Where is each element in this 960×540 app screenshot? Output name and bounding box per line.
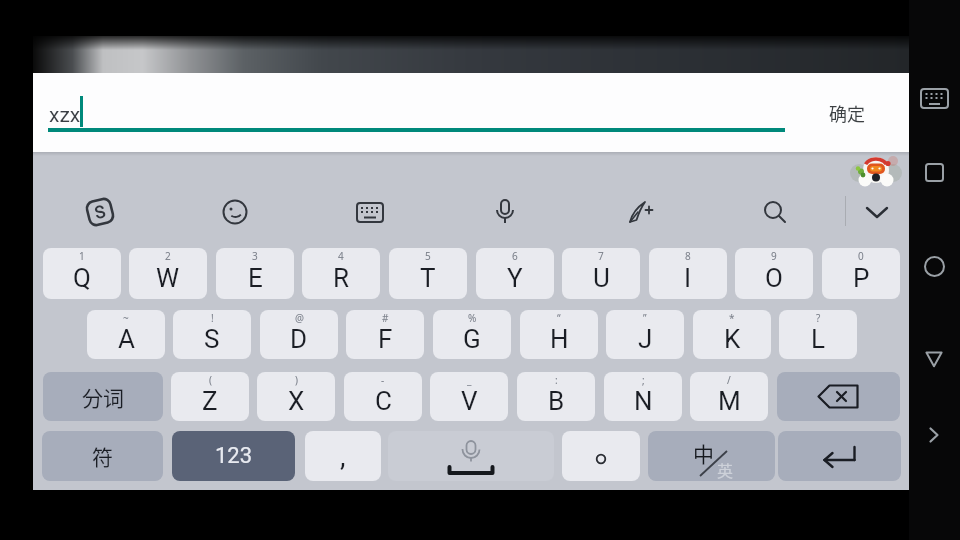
staticText: _ — [467, 373, 472, 387]
staticText: B — [548, 386, 565, 416]
staticText: ) — [295, 373, 298, 387]
button[interactable]: ) — [257, 372, 335, 421]
staticText: 英 — [717, 458, 734, 481]
staticText: E — [248, 263, 263, 293]
button[interactable]: 符 — [42, 431, 163, 481]
staticText: 7 — [598, 249, 604, 263]
button[interactable] — [920, 88, 949, 109]
staticText: 8 — [685, 249, 691, 263]
staticText: 中 — [693, 438, 714, 468]
staticText: # — [382, 311, 389, 325]
button[interactable]: 确定 — [784, 73, 909, 152]
button[interactable]: 123 — [172, 431, 295, 481]
staticText: G — [463, 324, 481, 354]
button[interactable] — [562, 431, 640, 481]
button[interactable] — [778, 431, 901, 481]
staticText: 5 — [425, 249, 431, 263]
staticText: 4 — [338, 249, 344, 263]
staticText: 9 — [771, 249, 777, 263]
staticText: @ — [295, 311, 304, 325]
button[interactable]: : — [517, 372, 595, 421]
button[interactable]: 4 — [302, 248, 380, 299]
staticText: X — [288, 386, 305, 416]
button[interactable]: - — [344, 372, 422, 421]
staticText: V — [461, 386, 478, 416]
button[interactable]: 0 — [822, 248, 900, 299]
staticText: T — [420, 263, 436, 293]
button[interactable] — [220, 197, 250, 227]
button[interactable] — [924, 256, 945, 277]
button[interactable]: 3 — [216, 248, 294, 299]
button[interactable]: 分词 — [43, 372, 163, 421]
button[interactable]: ! — [173, 310, 251, 359]
button[interactable]: “ — [520, 310, 598, 359]
staticText: H — [550, 324, 569, 354]
staticText: C — [375, 386, 392, 416]
button[interactable]: * — [693, 310, 771, 359]
staticText: N — [634, 386, 653, 416]
staticText: ; — [642, 373, 645, 387]
button[interactable] — [490, 197, 520, 227]
button[interactable]: / — [690, 372, 768, 421]
staticText: D — [290, 324, 308, 354]
staticText: 符 — [92, 441, 113, 471]
button[interactable] — [85, 197, 115, 227]
button[interactable] — [355, 197, 385, 227]
staticText: F — [378, 324, 393, 354]
button[interactable]: 1 — [43, 248, 121, 299]
button[interactable] — [388, 431, 554, 481]
button[interactable] — [777, 372, 900, 421]
button[interactable] — [760, 197, 790, 227]
staticText: 6 — [512, 249, 518, 263]
button[interactable] — [925, 163, 944, 182]
button[interactable]: ~ — [87, 310, 165, 359]
button[interactable]: S — [81, 193, 119, 231]
staticText: P — [853, 263, 870, 293]
button[interactable]: 2 — [129, 248, 207, 299]
staticText: ( — [209, 373, 212, 387]
button[interactable]: 9 — [735, 248, 813, 299]
staticText: S — [93, 201, 108, 223]
staticText: S — [204, 324, 220, 354]
staticText: 2 — [165, 249, 171, 263]
button[interactable]: 8 — [649, 248, 727, 299]
staticText: , — [340, 440, 346, 473]
staticText: % — [468, 311, 477, 325]
staticText: 123 — [215, 443, 253, 469]
button[interactable]: ” — [606, 310, 684, 359]
button[interactable] — [929, 427, 940, 443]
button[interactable]: 7 — [562, 248, 640, 299]
button[interactable] — [925, 351, 943, 368]
button[interactable]: 5 — [389, 248, 467, 299]
staticText: : — [555, 373, 558, 387]
button[interactable]: @ — [260, 310, 338, 359]
staticText: Z — [202, 386, 218, 416]
button[interactable]: , — [305, 431, 381, 481]
button[interactable]: ? — [779, 310, 857, 359]
staticText: M — [718, 386, 741, 416]
staticText: “ — [557, 311, 561, 325]
staticText: 分词 — [82, 382, 124, 412]
staticText: * — [729, 311, 735, 325]
staticText: ” — [643, 311, 647, 325]
button[interactable]: ( — [171, 372, 249, 421]
staticText: J — [638, 324, 653, 354]
staticText: U — [593, 263, 610, 293]
staticText: W — [156, 263, 180, 293]
staticText: / — [727, 373, 731, 387]
staticText: ? — [816, 311, 821, 325]
button[interactable]: % — [433, 310, 511, 359]
staticText: xzx — [49, 103, 81, 128]
staticText: ~ — [123, 311, 129, 325]
staticText: 确定 — [829, 100, 865, 126]
staticText: 1 — [79, 249, 85, 263]
button[interactable]: # — [346, 310, 424, 359]
staticText: K — [724, 324, 741, 354]
button[interactable]: 6 — [476, 248, 554, 299]
button[interactable] — [862, 197, 892, 227]
button[interactable]: ; — [604, 372, 682, 421]
button[interactable]: 中 — [648, 431, 775, 481]
button[interactable]: _ — [430, 372, 508, 421]
button[interactable] — [625, 197, 655, 227]
staticText: 0 — [858, 249, 864, 263]
